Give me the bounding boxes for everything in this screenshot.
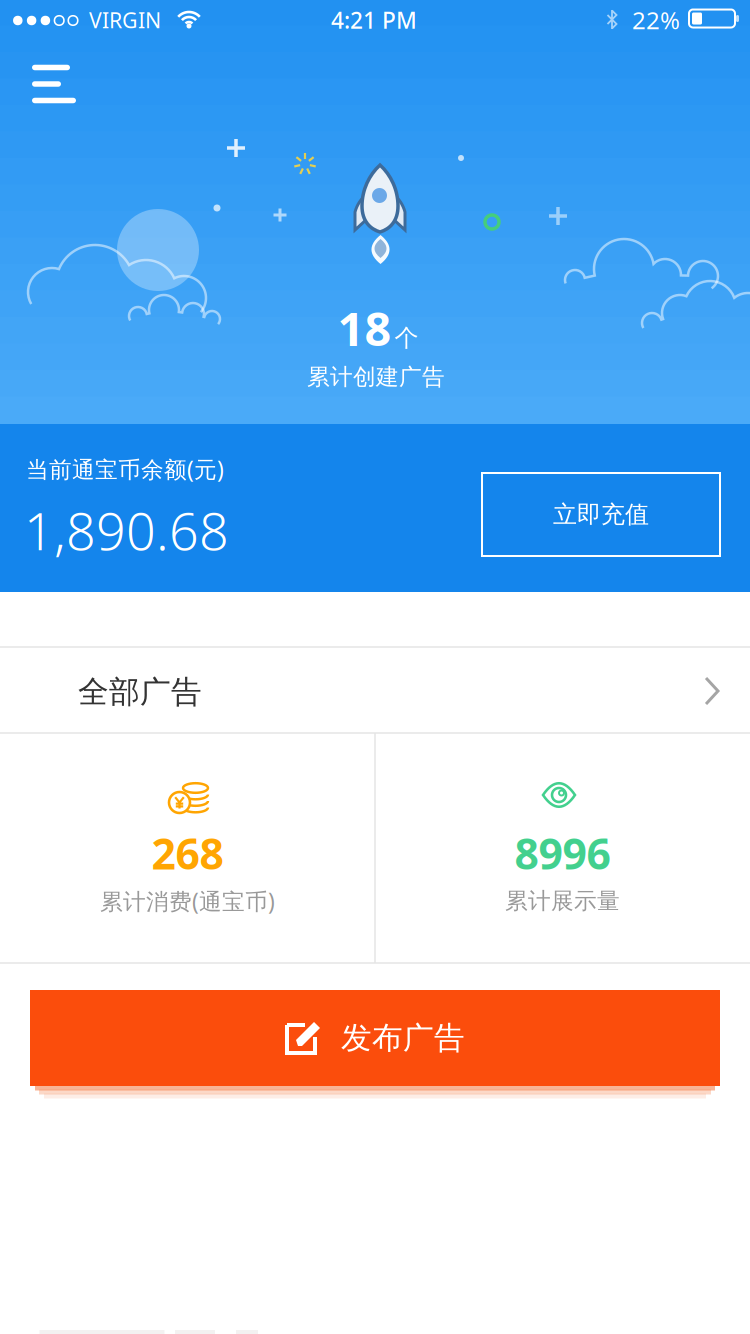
staticText: 当前通宝币余额(元) (26, 454, 224, 484)
staticText: 18 (337, 297, 391, 359)
button[interactable]: 发布广告 (30, 990, 720, 1086)
button[interactable]: Menu (24, 59, 84, 109)
staticText: 全部广告 (78, 673, 202, 711)
staticText: 累计展示量 (505, 887, 620, 915)
staticText: 累计消费(通宝币) (100, 886, 275, 916)
button[interactable]: 立即充值 (482, 473, 720, 556)
staticText: VIRGIN (89, 6, 161, 34)
staticText: 4:21 PM (331, 5, 417, 35)
staticText: 1,890.68 (24, 495, 229, 565)
staticText: 发布广告 (341, 1019, 465, 1057)
button[interactable]: 全部广告 (0, 650, 750, 734)
staticText: 268 (151, 825, 223, 881)
staticText: 立即充值 (553, 500, 649, 529)
staticText: 累计创建广告 (307, 363, 445, 391)
staticText: 个 (394, 323, 418, 353)
staticText: 8996 (514, 825, 610, 881)
staticText: 22% (632, 4, 680, 36)
